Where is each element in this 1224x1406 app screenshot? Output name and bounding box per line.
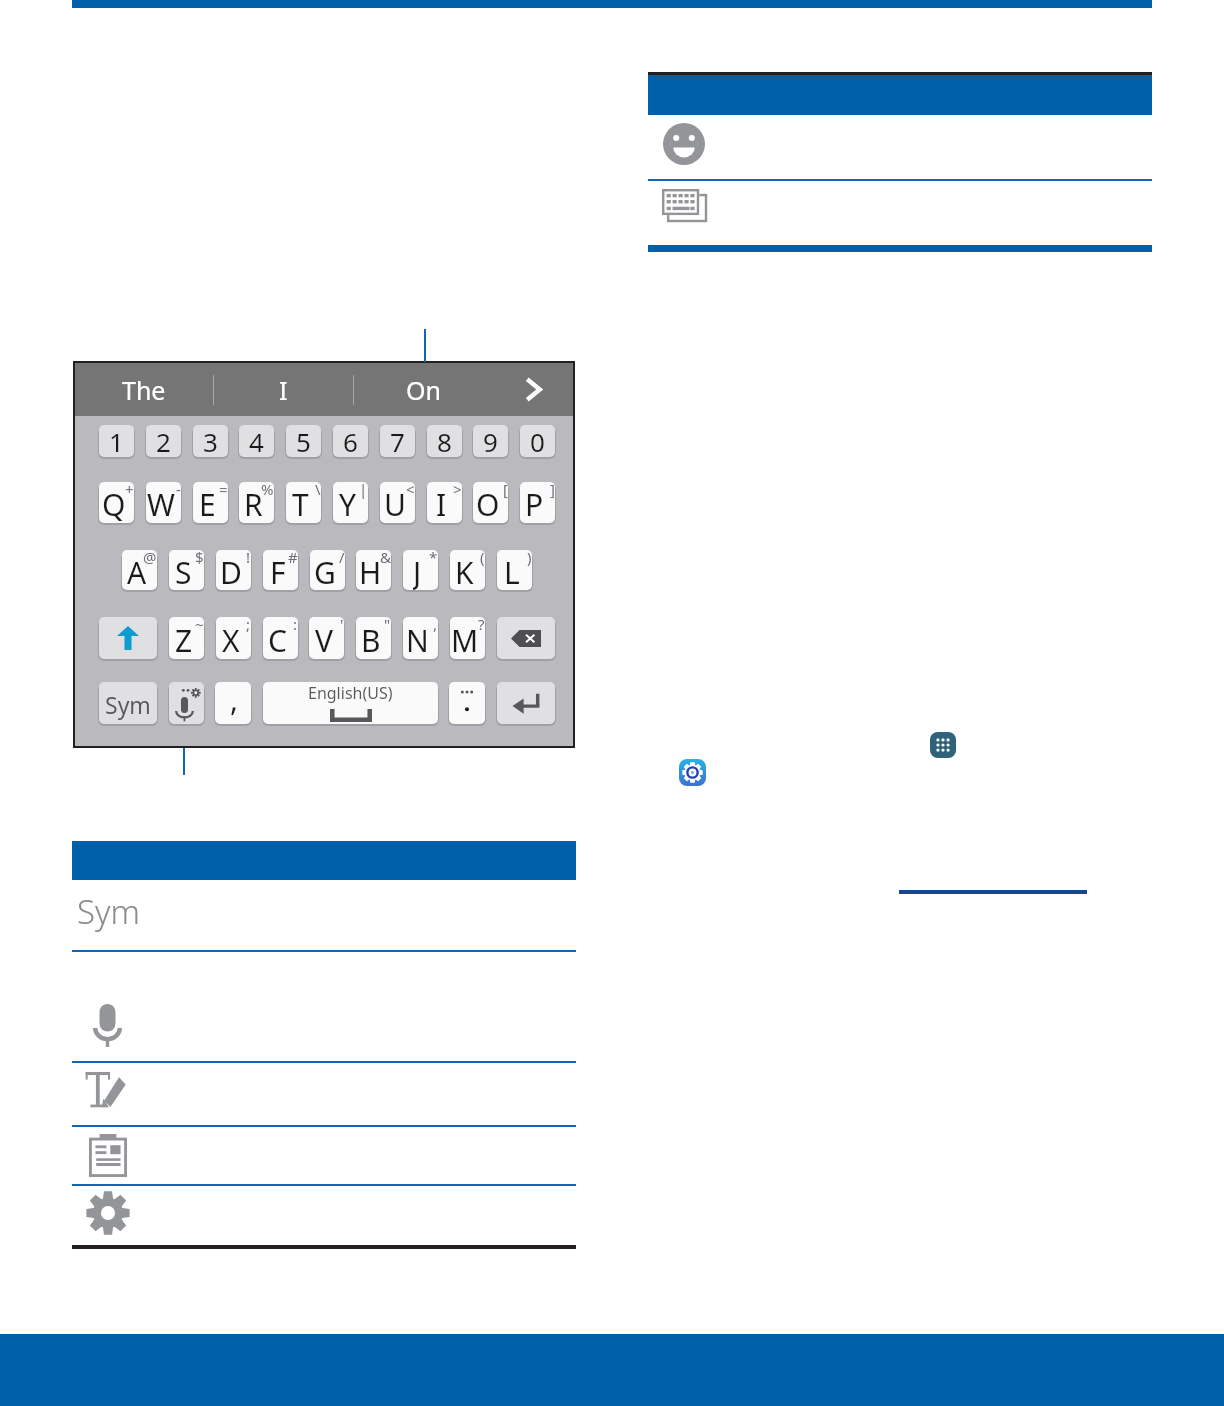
staticText: ,	[433, 617, 438, 634]
button[interactable]: 7	[380, 425, 415, 457]
staticText: B	[361, 620, 381, 659]
button[interactable]: The	[75, 363, 213, 416]
button[interactable]: V	[309, 617, 344, 659]
button[interactable]: I	[214, 363, 353, 416]
button[interactable]: J	[403, 550, 438, 590]
staticText: +	[125, 482, 134, 499]
button[interactable]: M	[450, 617, 485, 659]
staticText: E	[199, 484, 216, 523]
button[interactable]: P	[520, 482, 555, 523]
staticText: *	[429, 550, 438, 567]
button[interactable]: U	[380, 482, 415, 523]
staticText: R	[244, 484, 263, 523]
staticText: 8	[437, 425, 452, 456]
staticText: V	[315, 620, 333, 659]
staticText: >	[453, 482, 462, 499]
staticText: W	[147, 484, 175, 523]
button[interactable]: 8	[427, 425, 462, 457]
button[interactable]: Emoticons	[648, 115, 1152, 179]
button[interactable]: More suggestions	[493, 363, 573, 416]
staticText: On	[406, 373, 441, 407]
staticText: 4	[249, 425, 264, 456]
button[interactable]: Sym	[72, 880, 576, 950]
button[interactable]: C	[263, 617, 298, 659]
button[interactable]: T	[286, 482, 321, 523]
button[interactable]: I	[427, 482, 462, 523]
staticText: &	[380, 550, 391, 567]
staticText: =	[219, 482, 228, 499]
button[interactable]: Shift	[99, 617, 157, 659]
button[interactable]: A	[122, 550, 157, 590]
staticText: 3	[203, 425, 218, 456]
staticText: P	[525, 484, 544, 523]
button[interactable]: Q	[99, 482, 134, 523]
button[interactable]: B	[356, 617, 391, 659]
staticText: $	[195, 550, 204, 567]
button[interactable]: X	[216, 617, 251, 659]
staticText: F	[270, 552, 286, 590]
button[interactable]: English(US)	[263, 682, 438, 724]
button[interactable]: On	[354, 363, 493, 416]
staticText: #	[288, 550, 298, 567]
button[interactable]: Sym	[99, 682, 157, 724]
staticText: "	[384, 617, 391, 634]
button[interactable]: F	[263, 550, 298, 590]
staticText: [	[503, 482, 508, 499]
button[interactable]: Enter	[497, 682, 555, 724]
staticText: D	[220, 552, 242, 590]
staticText: (	[480, 550, 485, 567]
staticText: G	[314, 552, 336, 590]
button[interactable]: 0	[520, 425, 555, 457]
staticText: K	[455, 552, 474, 590]
staticText: 7	[390, 425, 405, 456]
staticText: X	[222, 620, 240, 659]
button[interactable]: Handwriting	[72, 1064, 576, 1125]
button[interactable]: Y	[333, 482, 368, 523]
button[interactable]: 2	[146, 425, 181, 457]
staticText: |	[359, 482, 368, 499]
staticText: J	[413, 552, 422, 590]
button[interactable]: Apps	[930, 732, 956, 758]
button[interactable]: Settings	[679, 759, 706, 786]
staticText: \	[315, 482, 321, 499]
staticText: A	[127, 552, 147, 590]
staticText: 6	[343, 425, 358, 456]
staticText: Y	[339, 484, 356, 523]
button[interactable]: S	[169, 550, 204, 590]
button[interactable]: ,	[215, 682, 251, 724]
button[interactable]: Voice input	[169, 682, 204, 724]
button[interactable]: O	[473, 482, 508, 523]
button[interactable]: Switch keyboard	[648, 181, 1152, 245]
button[interactable]: D	[216, 550, 251, 590]
button[interactable]: N	[403, 617, 438, 659]
staticText: ~	[195, 617, 204, 634]
button[interactable]: 9	[473, 425, 508, 457]
button[interactable]: 5	[286, 425, 321, 457]
button[interactable]: R	[239, 482, 274, 523]
button[interactable]: Backspace	[497, 617, 555, 659]
button[interactable]: 4	[239, 425, 274, 457]
staticText: L	[504, 552, 520, 590]
staticText: <	[406, 482, 415, 499]
button[interactable]: G	[310, 550, 345, 590]
button[interactable]: K	[450, 550, 485, 590]
staticText: 2	[156, 425, 171, 456]
button[interactable]: L	[497, 550, 532, 590]
staticText: -	[176, 482, 181, 499]
staticText: 5	[296, 425, 311, 456]
button[interactable]: Keyboard settings	[72, 1187, 576, 1247]
button[interactable]: 6	[333, 425, 368, 457]
button[interactable]: H	[356, 550, 391, 590]
staticText: Sym	[77, 889, 140, 934]
button[interactable]: Clipboard	[72, 1128, 576, 1184]
button[interactable]: Period	[449, 682, 485, 724]
button[interactable]: 1	[99, 425, 134, 457]
button[interactable]: 3	[193, 425, 228, 457]
staticText: I	[279, 373, 288, 407]
button[interactable]: Z	[169, 617, 204, 659]
button[interactable]: W	[146, 482, 181, 523]
button[interactable]: Voice input	[72, 953, 576, 1061]
staticText: :	[293, 617, 298, 634]
staticText: Z	[175, 620, 193, 659]
button[interactable]: E	[193, 482, 228, 523]
